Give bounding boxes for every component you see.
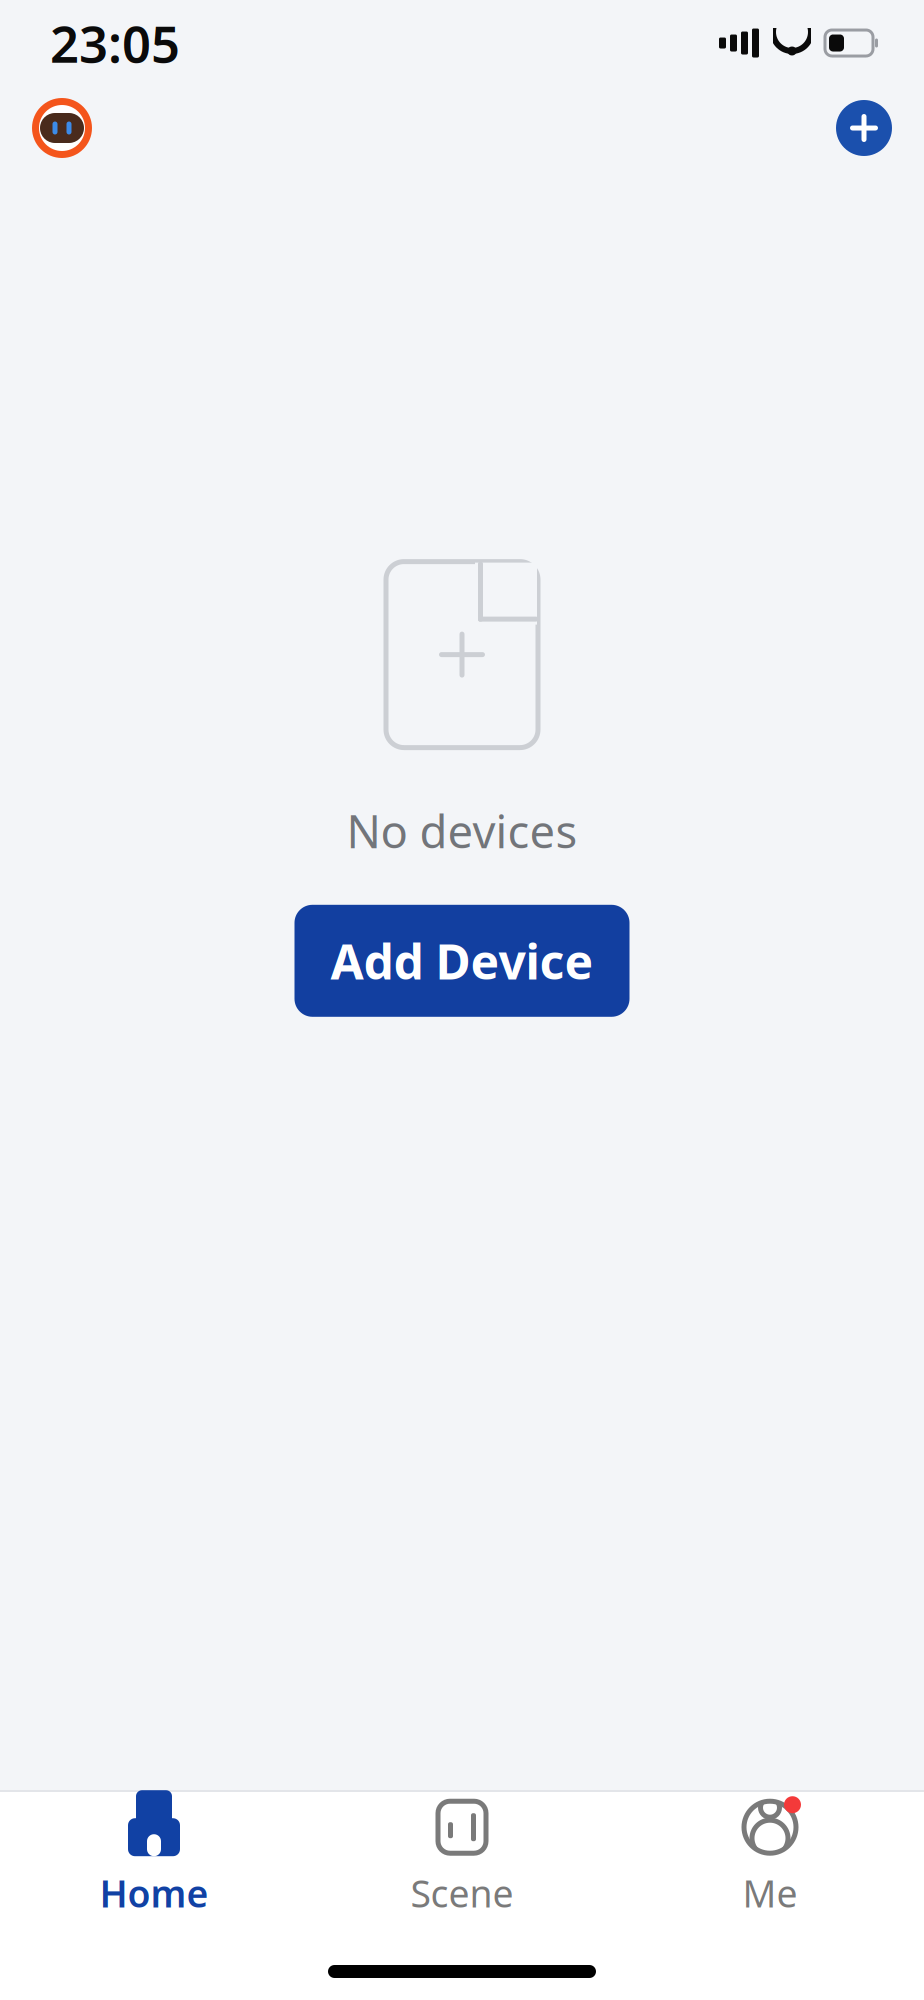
button[interactable]: Add Device	[294, 905, 629, 1017]
button[interactable]: Home	[0, 1792, 308, 1924]
staticText: Home	[99, 1868, 208, 1918]
staticText: No devices	[346, 801, 577, 861]
button[interactable]: Add	[836, 100, 892, 156]
staticText: Me	[742, 1868, 797, 1918]
button[interactable]: Me	[616, 1792, 924, 1924]
button[interactable]: Scene	[308, 1792, 616, 1924]
staticText: Scene	[410, 1868, 513, 1918]
staticText: 23:05	[50, 9, 180, 77]
staticText: Add Device	[330, 929, 593, 993]
button[interactable]: Profile	[32, 98, 92, 158]
